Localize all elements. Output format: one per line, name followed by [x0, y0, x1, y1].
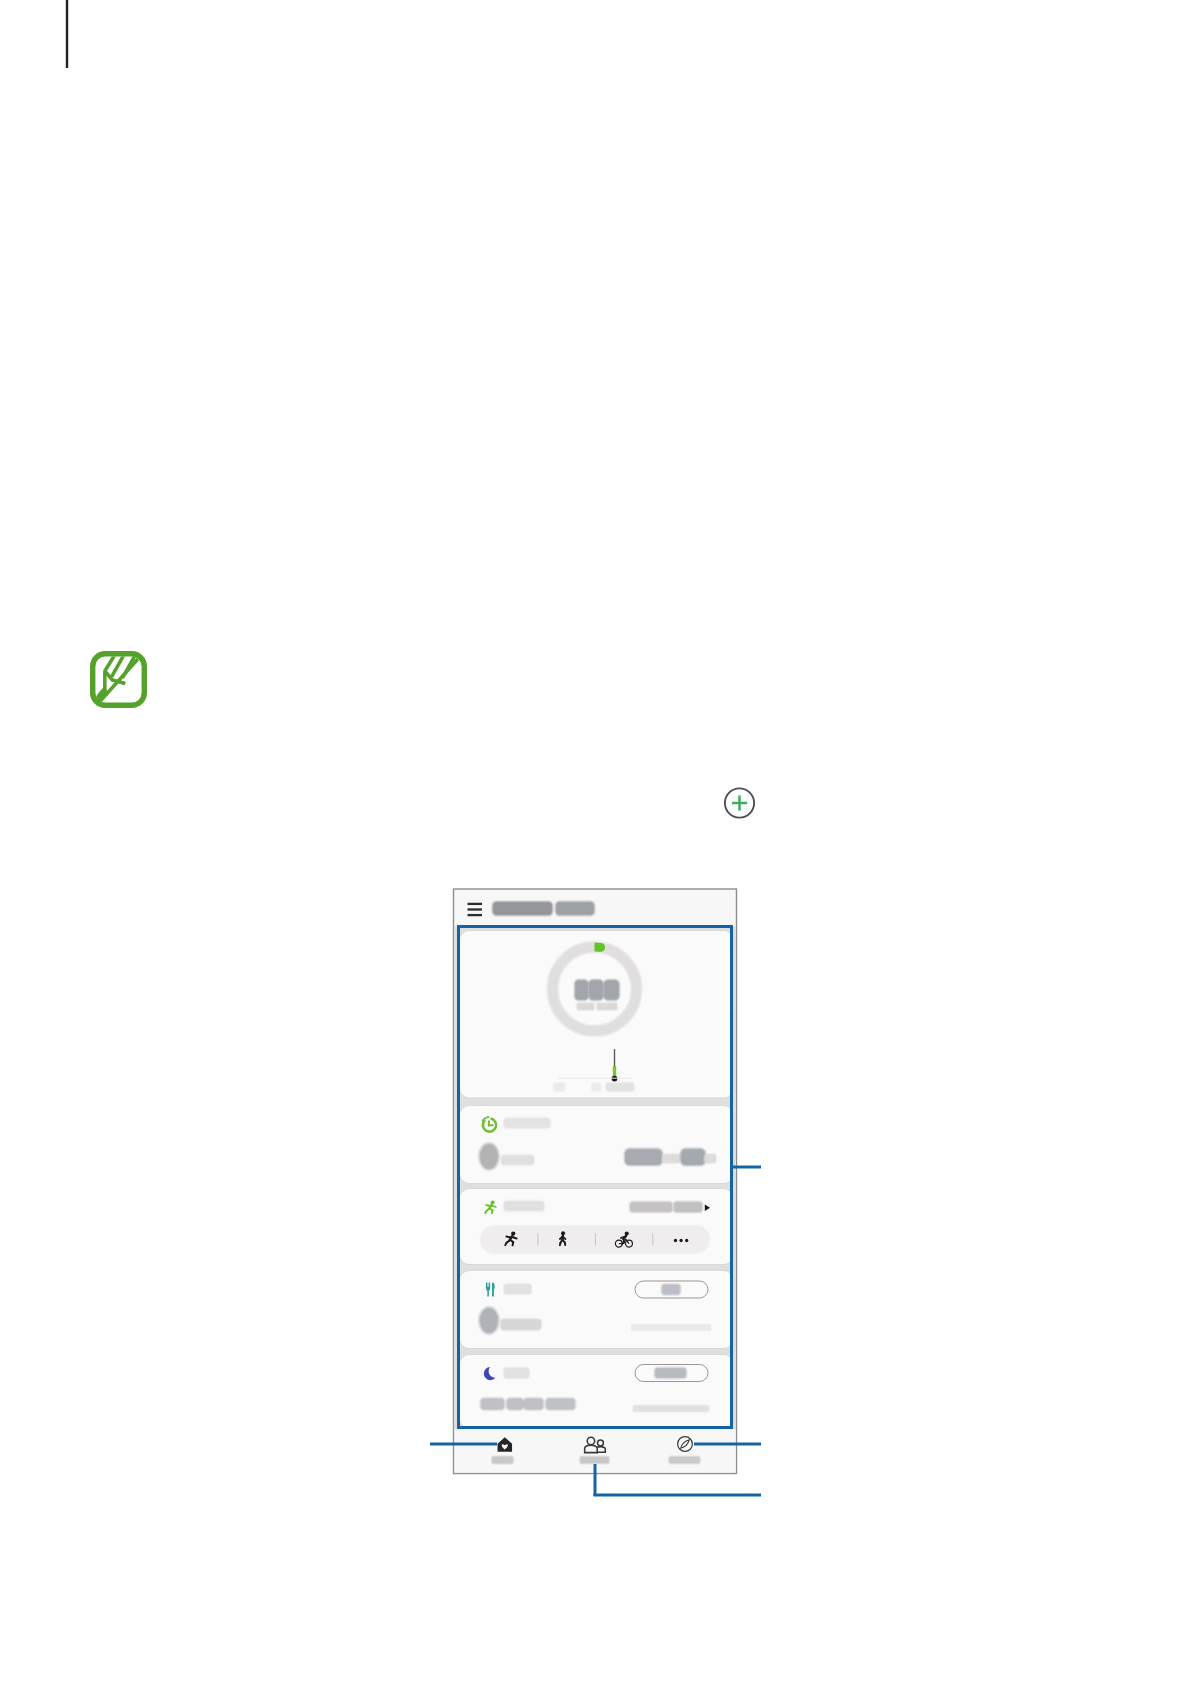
button[interactable]: Steps goal [460, 931, 733, 1097]
button[interactable]: Samsung Notes [90, 651, 148, 709]
button[interactable]: Navigation menu [464, 899, 485, 920]
button[interactable]: Together [549, 1430, 642, 1472]
button[interactable]: Exercise [460, 1189, 733, 1264]
button[interactable]: Food [460, 1271, 733, 1348]
button[interactable]: Active time [460, 1106, 733, 1183]
button[interactable]: Add [724, 787, 755, 818]
button[interactable]: Home [456, 1430, 549, 1472]
button[interactable]: Sleep [460, 1355, 733, 1428]
button[interactable]: Discover [642, 1430, 735, 1472]
